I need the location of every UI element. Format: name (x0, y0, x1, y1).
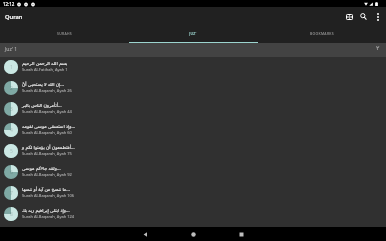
staticText: Surah Al-Baqarah, Ayah 26 (22, 88, 72, 93)
staticText: SURAHS (57, 31, 72, 36)
staticText: أفتطمعون أن يؤمنوا لكم و… (22, 144, 75, 150)
staticText: BOOKMARKS (310, 31, 334, 36)
staticText: Surah Al-Fatihah, Ayah 1 (22, 67, 68, 72)
staticText: 6 (10, 169, 13, 176)
staticText: 12:12 (3, 1, 15, 7)
button[interactable]: Search (356, 6, 370, 27)
staticText: 8 (10, 211, 13, 218)
staticText: Surah Al-Baqarah, Ayah 44 (22, 109, 72, 114)
staticText: وإذ استسقى موسى لقومه… (22, 123, 76, 129)
button[interactable]: 6 (0, 162, 386, 183)
staticText: 1 (10, 64, 13, 71)
staticText: 4 (10, 127, 13, 134)
button[interactable]: Recents (217, 227, 265, 241)
button[interactable]: More options (370, 6, 385, 27)
button[interactable]: JUZ' (128, 28, 257, 43)
staticText: ولقد جاءكم موسى… (22, 165, 61, 171)
staticText: 7 (10, 190, 13, 197)
button[interactable]: 5 (0, 141, 386, 162)
staticText: Quran (5, 13, 23, 21)
staticText: 3 (10, 106, 13, 113)
staticText: Juz' 1 (5, 46, 18, 53)
staticText: Surah Al-Baqarah, Ayah 106 (22, 193, 75, 198)
staticText: وإذ ابتلى إبراهيم ربه بك… (22, 207, 70, 213)
button[interactable]: SURAHS (0, 28, 128, 43)
staticText: JUZ' (189, 31, 197, 36)
button[interactable]: Back (121, 227, 169, 241)
staticText: أتأمرون الناس بالبر… (22, 102, 62, 108)
staticText: Surah Al-Baqarah, Ayah 124 (22, 214, 75, 219)
button[interactable]: 7 (0, 183, 386, 204)
button[interactable]: 8 (0, 204, 386, 225)
button[interactable]: Translations (342, 6, 356, 27)
staticText: ٢ (376, 44, 380, 52)
button[interactable]: 4 (0, 120, 386, 141)
button[interactable]: BOOKMARKS (257, 28, 386, 43)
button[interactable]: Home (169, 227, 217, 241)
staticText: Surah Al-Baqarah, Ayah 60 (22, 130, 72, 135)
button[interactable]: 3 (0, 99, 386, 120)
button[interactable]: 1 (0, 57, 386, 78)
staticText: Surah Al-Baqarah, Ayah 75 (22, 151, 72, 156)
staticText: ما ننسخ من آية أو ننسها… (22, 186, 70, 192)
staticText: إن الله لا يستحيي أنْ… (22, 81, 64, 87)
staticText: 2 (10, 85, 13, 92)
staticText: Surah Al-Baqarah, Ayah 92 (22, 172, 72, 177)
staticText: 5 (10, 148, 13, 155)
staticText: بسم الله الرحمن الرحيم (22, 60, 68, 66)
button[interactable]: 2 (0, 78, 386, 99)
